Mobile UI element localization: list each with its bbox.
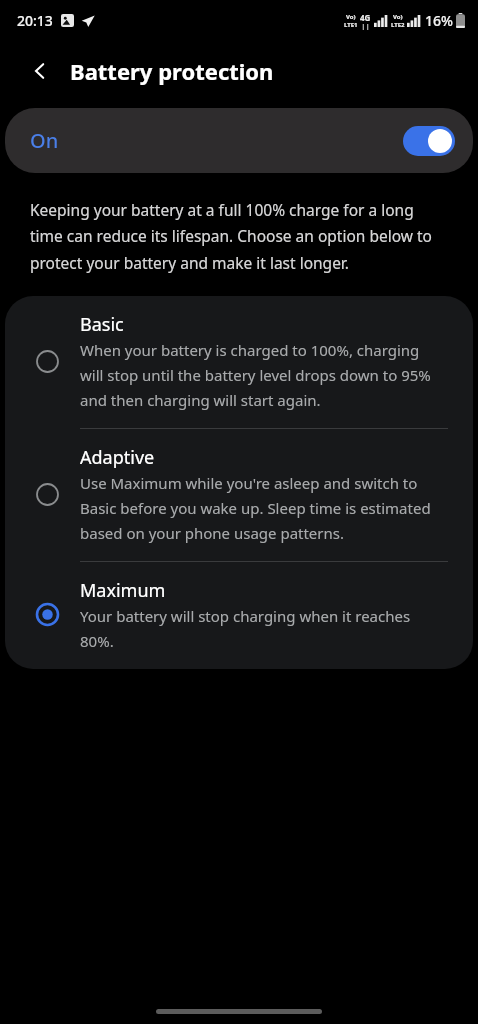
staticText: 4G xyxy=(360,12,371,23)
staticText: On xyxy=(30,127,59,154)
button[interactable]: On xyxy=(5,108,473,173)
staticText: Battery protection xyxy=(70,56,274,86)
staticText: Basic xyxy=(80,312,124,337)
staticText: Vo) xyxy=(393,13,403,21)
staticText: Your battery will stop charging when it … xyxy=(80,606,446,651)
button[interactable]: Back xyxy=(18,49,62,93)
staticText: Keeping your battery at a full 100% char… xyxy=(30,199,448,274)
staticText: 20:13 xyxy=(17,11,53,30)
button[interactable]: Adaptive xyxy=(5,429,473,561)
button[interactable]: Basic xyxy=(5,296,473,428)
staticText: 16% xyxy=(425,11,453,30)
staticText: Maximum xyxy=(80,578,166,603)
staticText: Use Maximum while you're asleep and swit… xyxy=(80,473,446,543)
staticText: When your battery is charged to 100%, ch… xyxy=(80,340,446,410)
staticText: Vo) xyxy=(346,13,356,21)
staticText: Adaptive xyxy=(80,445,155,470)
button[interactable]: Maximum xyxy=(5,562,473,669)
staticText: LTE1 xyxy=(344,21,358,29)
staticText: LTE2 xyxy=(391,21,405,29)
button[interactable]: Battery protection toggle xyxy=(403,126,455,156)
